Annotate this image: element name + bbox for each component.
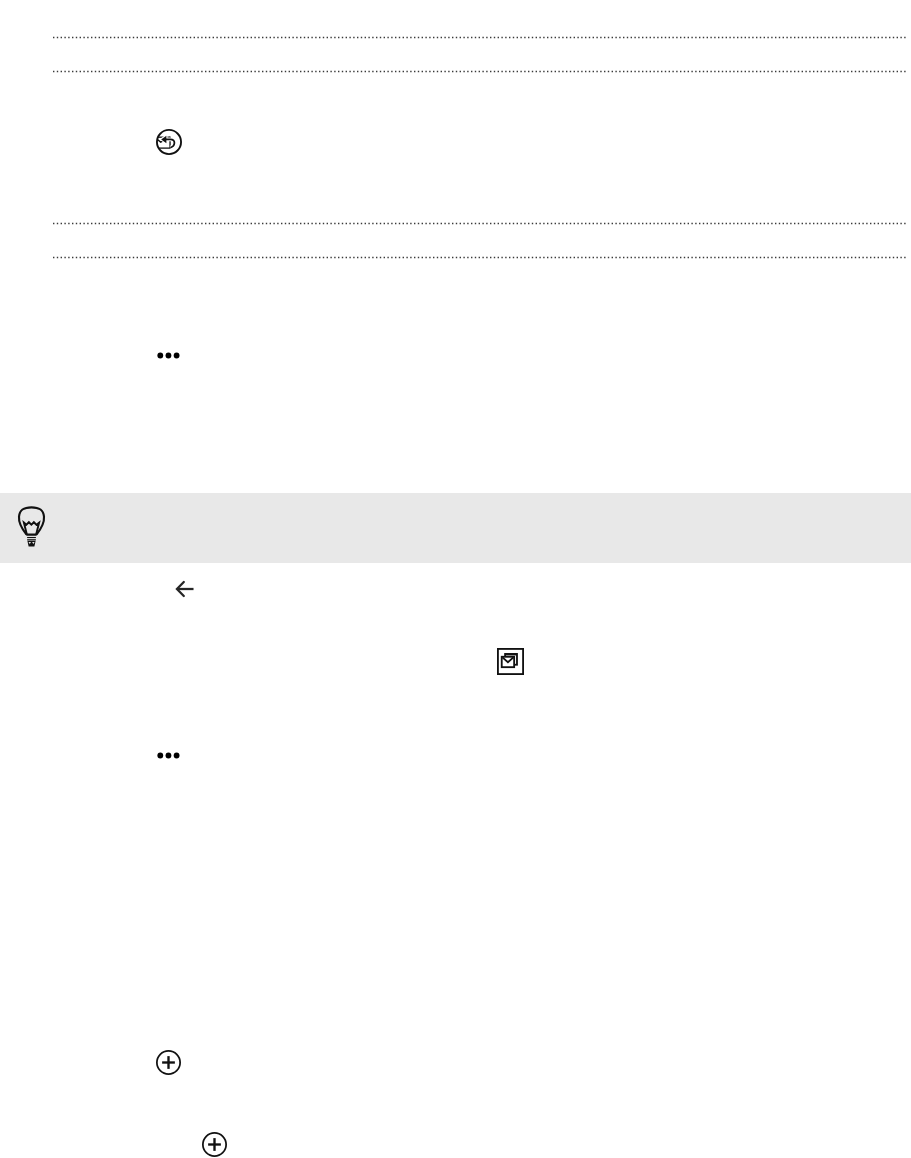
button[interactable]: Reply bbox=[156, 129, 182, 155]
button[interactable]: Back bbox=[173, 577, 197, 601]
button[interactable]: More options bbox=[150, 343, 190, 368]
button[interactable]: Add bbox=[156, 1050, 181, 1075]
button[interactable]: More options bbox=[150, 743, 190, 768]
button[interactable]: Mail bbox=[497, 648, 524, 675]
button[interactable]: Add bbox=[202, 1132, 227, 1157]
